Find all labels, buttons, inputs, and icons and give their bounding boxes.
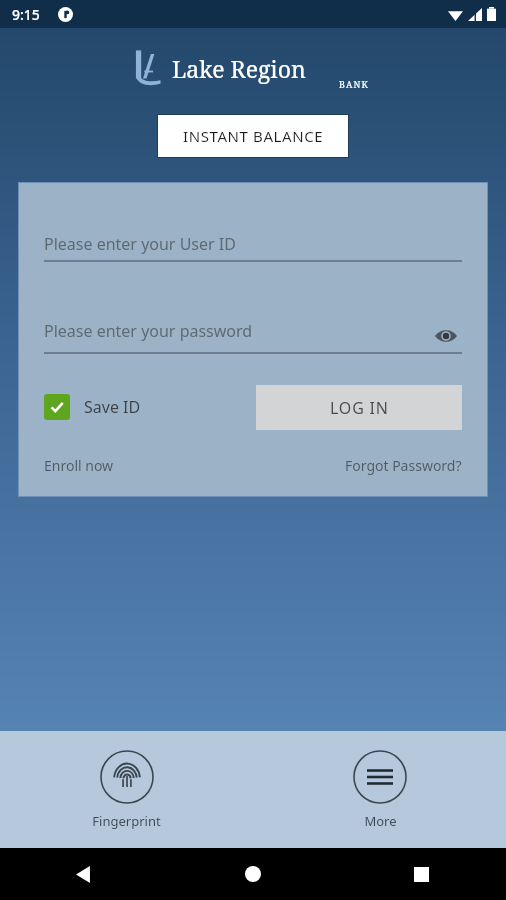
button[interactable]: Home (168, 848, 337, 900)
staticText: Enroll now (44, 456, 114, 475)
button[interactable]: Enroll now (44, 452, 114, 479)
staticText: More (364, 812, 397, 830)
button[interactable]: INSTANT BALANCE (157, 114, 349, 158)
button[interactable]: Fingerprint login (74, 744, 179, 836)
button[interactable]: Recent apps (337, 848, 506, 900)
staticText: Lake Region (172, 53, 306, 84)
staticText: Forgot Password? (345, 456, 462, 475)
staticText: Please enter your password (44, 320, 253, 342)
staticText: INSTANT BALANCE (183, 126, 324, 146)
staticText: Save ID (84, 396, 141, 418)
button[interactable]: Please enter your password (44, 320, 462, 342)
button[interactable]: Show password (430, 320, 462, 352)
staticText: 9:15 (12, 5, 40, 24)
button[interactable]: Forgot Password? (345, 452, 462, 479)
button[interactable]: Back (0, 848, 168, 900)
button[interactable]: Please enter your User ID (44, 228, 462, 260)
staticText: Please enter your User ID (44, 233, 236, 255)
button[interactable]: More options (335, 744, 425, 836)
staticText: BANK (339, 78, 370, 90)
staticText: LOG IN (330, 397, 389, 419)
button[interactable]: Save ID (44, 394, 141, 420)
button[interactable]: LOG IN (256, 385, 462, 430)
staticText: Fingerprint (92, 812, 161, 830)
